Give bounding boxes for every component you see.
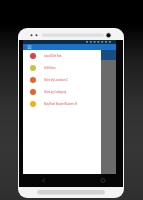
button[interactable]: Buy Real Estate Routers H	[23, 98, 101, 110]
staticText: Sites by Location C	[44, 78, 68, 82]
button[interactable]: Local Gift Site	[23, 50, 101, 62]
button[interactable]: Sites by Category	[23, 86, 101, 98]
button[interactable]: Open navigation drawer	[23, 44, 116, 50]
button[interactable]: Sites by Location C	[23, 74, 101, 86]
button[interactable]: Gift Sites	[23, 62, 101, 74]
staticText: Local Gift Site	[44, 54, 62, 58]
staticText: Gift Sites	[44, 66, 56, 70]
staticText: Buy Real Estate Routers H	[44, 102, 78, 106]
staticText: Sites by Category	[44, 90, 67, 94]
